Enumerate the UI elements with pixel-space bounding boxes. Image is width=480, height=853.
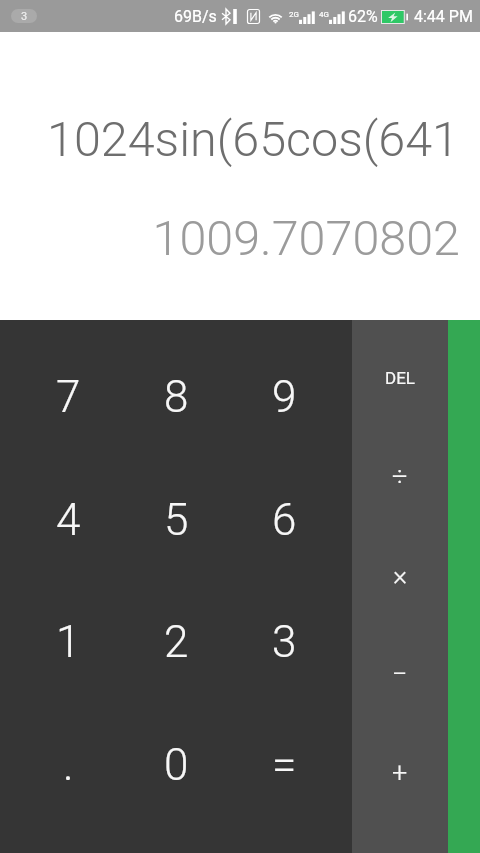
button[interactable]: 3 [230,587,338,720]
button[interactable]: 7 [14,320,122,454]
button[interactable]: 9 [230,320,338,454]
staticText: 3 [21,10,28,23]
staticText: 9 [272,371,297,423]
staticText: 3 [272,616,297,668]
button[interactable]: − [352,639,448,746]
staticText: 1024sin(65cos(641 [46,111,459,168]
button[interactable]: + [352,746,448,853]
staticText: × [393,560,408,592]
button[interactable]: 2 [122,587,230,720]
button[interactable]: 6 [230,454,338,587]
button[interactable]: 4 [14,454,122,587]
staticText: 4G [319,10,329,19]
staticText: 69B/s [174,7,217,26]
button[interactable]: DEL [352,320,448,426]
button[interactable]: . [14,720,122,853]
staticText: . [63,739,74,791]
staticText: 1009.7070802 [152,210,460,267]
staticText: ÷ [392,461,408,493]
button[interactable]: 5 [122,454,230,587]
staticText: 2G [289,10,299,19]
button[interactable]: 0 [122,720,230,853]
staticText: 1 [56,616,81,668]
staticText: 4:44 PM [414,7,473,26]
staticText: 8 [164,371,189,423]
staticText: 0 [164,739,189,791]
staticText: 5 [164,494,189,546]
button[interactable]: 8 [122,320,230,454]
staticText: = [272,739,297,791]
button[interactable]: ÷ [352,426,448,532]
staticText: − [392,658,408,690]
staticText: DEL [385,368,415,388]
button[interactable]: = [230,720,338,853]
staticText: + [392,757,408,789]
staticText: 2 [164,616,189,668]
button[interactable]: 1 [14,587,122,720]
staticText: 6 [272,494,297,546]
staticText: 4 [56,494,81,546]
button[interactable]: × [352,532,448,639]
staticText: 62% [348,7,378,26]
staticText: 7 [56,371,81,423]
